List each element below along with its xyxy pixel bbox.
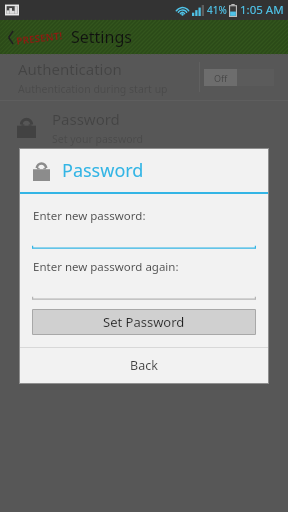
- button[interactable]: [32, 297, 256, 300]
- staticText: Password: [52, 109, 120, 129]
- staticText: Enter new password:: [33, 208, 146, 224]
- staticText: PRESENT!: [15, 28, 64, 48]
- staticText: Back: [130, 357, 158, 374]
- button[interactable]: Password: [0, 101, 288, 153]
- button[interactable]: Authentication: [0, 54, 288, 100]
- staticText: Enter new password again:: [33, 259, 179, 275]
- staticText: Off: [214, 72, 228, 84]
- staticText: Password: [62, 158, 144, 183]
- staticText: Authentication during start up: [18, 82, 168, 96]
- staticText: 41%: [207, 3, 227, 17]
- button[interactable]: Back: [0, 20, 288, 54]
- button[interactable]: Set Password: [33, 310, 255, 334]
- staticText: 1:05 AM: [240, 2, 284, 18]
- staticText: Set your password: [52, 132, 144, 146]
- staticText: Settings: [71, 26, 132, 48]
- button[interactable]: Off: [200, 54, 278, 100]
- button[interactable]: [32, 246, 256, 249]
- staticText: Set Password: [103, 313, 185, 331]
- staticText: Authentication: [18, 59, 122, 79]
- button[interactable]: Back: [20, 348, 268, 383]
